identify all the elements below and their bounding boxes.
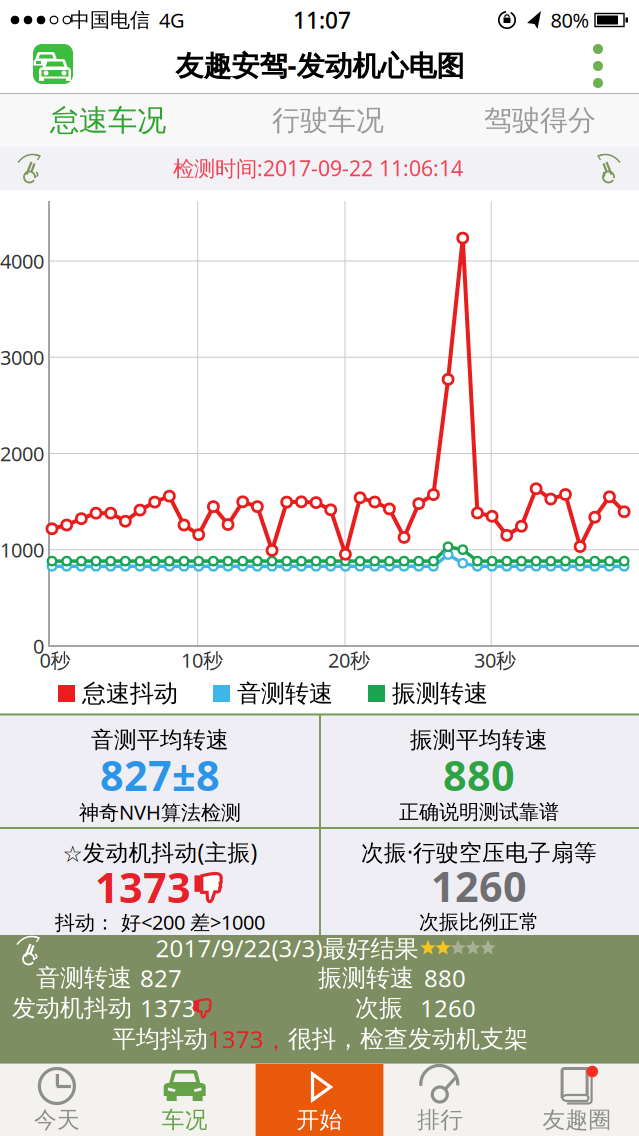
button[interactable]: 车况 [128,1063,256,1136]
staticText: 10秒 [181,647,223,673]
staticText: 1373 [95,860,191,914]
staticText: 振测平均转速 [410,726,548,754]
staticText: 2000 [0,440,44,467]
staticText: 今天 [34,1106,80,1134]
button[interactable]: More options [588,40,608,92]
staticText: 平均抖动 [112,1024,208,1054]
staticText: 4000 [0,248,44,274]
staticText: 友趣圈 [543,1106,612,1134]
staticText: 880 [443,748,515,802]
staticText: 正确说明测试靠谱 [399,800,559,824]
staticText: 音测转速 [36,963,132,993]
staticText: 3000 [0,344,44,371]
staticText: 开始 [296,1106,342,1134]
staticText: 1373， [208,1023,288,1055]
staticText: 次振·行驶空压电子扇等 [361,837,597,867]
staticText: 827±8 [100,748,220,802]
staticText: 11:07 [293,5,351,35]
staticText: ☆发动机抖动(主振) [62,837,257,867]
staticText: 1260 [420,992,476,1024]
staticText: 1373 [140,992,196,1024]
staticText: 抖动： 好<200 差>1000 [55,909,265,935]
staticText: 音测转速 [237,679,333,708]
staticText: 1000 [0,536,44,563]
staticText: 检测时间:2017-09-22 11:06:14 [173,154,463,182]
staticText: 中国电信 [70,8,150,32]
staticText: 827 [140,962,182,994]
staticText: 0 [33,633,44,659]
staticText: 80% [550,7,589,33]
button[interactable]: 今天 [0,1063,128,1136]
staticText: 驾驶得分 [484,103,596,138]
staticText: 排行 [417,1106,463,1134]
staticText: 怠速车况 [50,102,166,138]
staticText: 4G [159,7,185,33]
button[interactable]: 排行 [383,1063,511,1136]
staticText: 音测平均转速 [91,726,229,754]
staticText: 30秒 [474,647,516,673]
staticText: 次振 [355,993,403,1023]
staticText: 怠速抖动 [82,679,178,708]
button[interactable]: 怠速车况 [1,94,214,147]
button[interactable]: 友趣圈 [511,1063,639,1136]
button[interactable]: 行驶车况 [221,94,434,147]
staticText: 0秒 [39,647,70,673]
staticText: 次振比例正常 [419,910,539,934]
button[interactable]: 开始 [256,1063,383,1136]
staticText: 神奇NVH算法检测 [79,799,241,825]
staticText: 车况 [162,1106,208,1134]
staticText: 880 [424,962,466,994]
staticText: 行驶车况 [272,103,384,138]
staticText: 振测转速 [392,679,488,708]
staticText: 1260 [431,859,527,913]
staticText: 发动机抖动 [12,993,132,1023]
staticText: 2017/9/22(3/3)最好结果 [155,932,418,964]
staticText: 友趣安驾-发动机心电图 [175,46,464,84]
staticText: 20秒 [328,647,370,673]
staticText: 振测转速 [318,963,414,993]
staticText: 很抖，检查发动机支架 [288,1024,528,1054]
button[interactable]: 驾驶得分 [433,94,639,147]
